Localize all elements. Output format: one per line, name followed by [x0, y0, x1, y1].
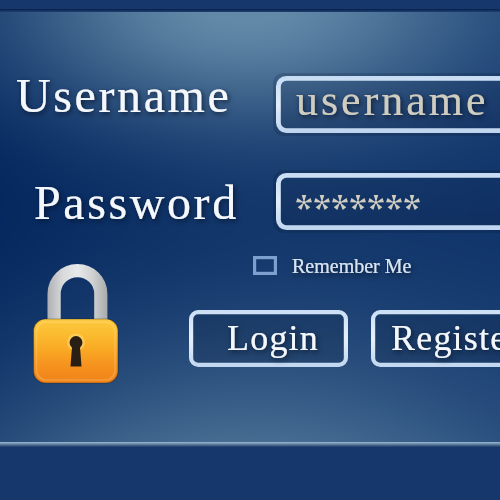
button[interactable]	[276, 76, 500, 133]
button[interactable]: Login	[189, 310, 348, 367]
button[interactable]: Register	[371, 310, 500, 367]
button[interactable]	[276, 173, 500, 230]
button[interactable]: Remember Me checkbox	[253, 256, 277, 275]
staticText: username	[296, 76, 489, 125]
staticText: Username	[16, 69, 232, 122]
staticText: Login	[227, 318, 319, 358]
other: Lock	[33, 263, 119, 385]
other: Password	[295, 193, 421, 213]
staticText: Password	[34, 176, 239, 229]
staticText: Remember Me	[292, 255, 412, 277]
staticText: Register	[391, 318, 500, 358]
